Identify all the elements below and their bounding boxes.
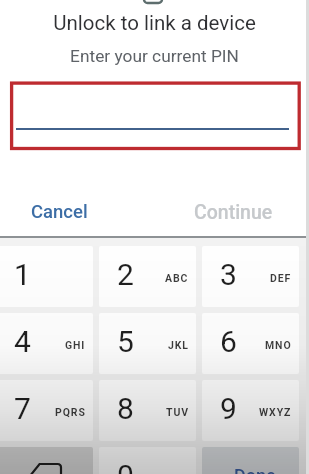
staticText: 0 xyxy=(117,458,134,474)
staticText: 5 xyxy=(117,324,134,359)
button[interactable]: 4 xyxy=(0,313,93,374)
staticText: Unlock to link a device xyxy=(0,11,309,35)
staticText: 3 xyxy=(220,257,237,292)
staticText: GHI xyxy=(65,339,86,351)
staticText: MNO xyxy=(265,339,292,351)
staticText: WXYZ xyxy=(259,406,292,418)
button[interactable]: 3 xyxy=(202,246,299,307)
button[interactable]: 6 xyxy=(202,313,299,374)
staticText: 4 xyxy=(14,324,31,359)
staticText: 7 xyxy=(14,391,31,426)
button[interactable]: Backspace xyxy=(0,447,93,474)
staticText: 2 xyxy=(117,257,134,292)
staticText: Done xyxy=(234,465,276,474)
staticText: 9 xyxy=(220,391,237,426)
button[interactable]: Continue xyxy=(183,196,284,229)
staticText: DEF xyxy=(270,272,292,284)
staticText: TUV xyxy=(166,406,189,418)
button[interactable]: Cancel xyxy=(20,196,99,228)
staticText: 6 xyxy=(220,324,237,359)
button[interactable] xyxy=(12,92,292,132)
staticText: ABC xyxy=(165,272,189,284)
button[interactable]: 7 xyxy=(0,380,93,441)
button[interactable]: 5 xyxy=(99,313,196,374)
button[interactable]: 0 xyxy=(99,447,196,474)
button[interactable]: 1 xyxy=(0,246,93,307)
staticText: 8 xyxy=(117,391,134,426)
staticText: Enter your current PIN xyxy=(0,46,309,66)
staticText: 1 xyxy=(14,257,31,292)
button[interactable]: 9 xyxy=(202,380,299,441)
staticText: Cancel xyxy=(31,201,88,223)
staticText: Continue xyxy=(194,201,273,224)
button[interactable]: 8 xyxy=(99,380,196,441)
button[interactable]: 2 xyxy=(99,246,196,307)
staticText: JKL xyxy=(168,339,189,351)
button[interactable]: Done xyxy=(202,447,299,474)
staticText: PQRS xyxy=(55,406,86,418)
